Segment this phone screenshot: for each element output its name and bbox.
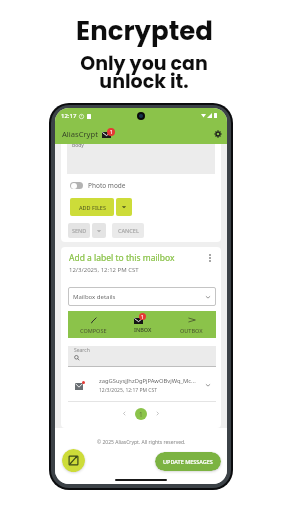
staticText: 12/3/2025, 12:17 PM CST (99, 387, 158, 394)
button[interactable]: More options (204, 252, 216, 264)
button[interactable]: Settings (212, 128, 223, 139)
button[interactable]: COMPOSE (68, 311, 118, 338)
staticText: Only you can unlock it. (80, 50, 208, 95)
staticText: COMPOSE (80, 327, 107, 334)
staticText: zagGSuysjJhzDgPjPAwOBvjWq_Mc... (99, 377, 196, 385)
button[interactable]: SEND (68, 223, 90, 238)
staticText: Encrypted (76, 13, 213, 49)
staticText: Photo mode (88, 181, 126, 190)
staticText: UPDATE MESSAGES (163, 458, 213, 465)
button[interactable]: zagGSuysjJhzDgPjPAwOBvjWq_Mc... (68, 369, 216, 401)
staticText: INBOX (134, 326, 152, 333)
staticText: Mailbox details (73, 293, 116, 301)
button[interactable]: More add options (116, 198, 132, 216)
staticText: 12:17 (61, 112, 77, 120)
button[interactable]: 1 (135, 408, 147, 420)
button[interactable]: Previous page (119, 408, 130, 419)
button[interactable]: UPDATE MESSAGES (155, 452, 221, 471)
staticText: CANCEL (118, 227, 139, 234)
staticText: OUTBOX (180, 327, 203, 334)
staticText: 12/3/2025, 12:12 PM CST (69, 266, 139, 274)
button[interactable]: Search (68, 346, 216, 367)
button[interactable]: Next page (152, 408, 163, 419)
button[interactable]: 1 (118, 311, 167, 338)
staticText: 1 (139, 410, 143, 419)
staticText: 1 (110, 129, 113, 135)
button[interactable]: Photo mode toggle (70, 182, 83, 189)
button[interactable]: More send options (92, 223, 106, 238)
button[interactable]: Clipboard (62, 449, 85, 472)
staticText: SEND (72, 227, 87, 234)
staticText: Body (72, 144, 84, 149)
button[interactable]: ADD FILES (70, 198, 114, 216)
staticText: Add a label to this mailbox (69, 252, 175, 264)
staticText: © 2025 AliasCrypt. All rights reserved. (97, 439, 186, 446)
staticText: AliasCrypt (62, 129, 98, 139)
button[interactable]: CANCEL (112, 223, 144, 238)
button[interactable]: Mailbox details (68, 287, 216, 306)
button[interactable]: OUTBOX (167, 311, 216, 338)
staticText: ADD FILES (79, 204, 106, 211)
staticText: Search (74, 347, 90, 354)
staticText: 1 (141, 314, 144, 320)
